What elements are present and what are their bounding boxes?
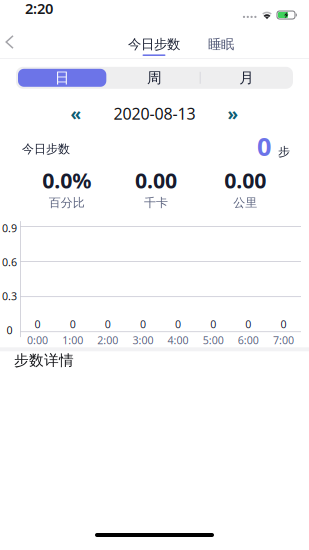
staticText: 0 — [245, 317, 251, 331]
button[interactable]: 今日步数 — [128, 28, 180, 56]
staticText: 0 — [280, 317, 286, 331]
staticText: 5:00 — [203, 333, 224, 347]
staticText: 0 — [70, 317, 76, 331]
button[interactable]: Back — [0, 28, 24, 56]
staticText: 7:00 — [273, 333, 294, 347]
button[interactable]: 月 — [201, 67, 293, 89]
staticText: 百分比 — [49, 195, 85, 210]
staticText: 0 — [105, 317, 111, 331]
staticText: 0 — [175, 317, 181, 331]
staticText: 0:00 — [27, 333, 48, 347]
staticText: 0 — [210, 317, 216, 331]
staticText: 今日步数 — [22, 142, 70, 156]
staticText: » — [227, 102, 238, 125]
staticText: 0.00 — [224, 166, 266, 194]
staticText: 今日步数 — [128, 36, 180, 52]
staticText: 2020-08-13 — [113, 103, 195, 124]
button[interactable]: Next day — [217, 103, 249, 123]
staticText: 月 — [239, 69, 254, 87]
staticText: 公里 — [233, 195, 257, 210]
staticText: 0.6 — [2, 255, 17, 269]
staticText: 日 — [55, 69, 70, 87]
staticText: 0 — [140, 317, 146, 331]
staticText: 1:00 — [62, 333, 83, 347]
staticText: 步数详情 — [14, 351, 74, 369]
staticText: 4:00 — [168, 333, 189, 347]
staticText: 0.0% — [42, 166, 91, 194]
staticText: 周 — [147, 69, 162, 87]
staticText: 0 — [6, 323, 12, 337]
staticText: 6:00 — [238, 333, 259, 347]
staticText: 0 — [35, 317, 41, 331]
staticText: 0 — [257, 129, 271, 163]
staticText: 步 — [278, 144, 290, 159]
button[interactable]: Previous day — [60, 103, 92, 123]
staticText: 0.9 — [2, 221, 17, 235]
staticText: 0.3 — [2, 289, 17, 303]
staticText: 睡眠 — [208, 36, 234, 52]
staticText: 2:00 — [97, 333, 118, 347]
button[interactable]: 日 — [16, 67, 108, 89]
staticText: « — [70, 102, 81, 125]
button[interactable]: 周 — [108, 67, 201, 89]
staticText: 2:20 — [25, 0, 53, 18]
staticText: 千卡 — [144, 195, 168, 210]
button[interactable]: 睡眠 — [208, 28, 234, 56]
staticText: 0.00 — [135, 166, 177, 194]
staticText: 3:00 — [132, 333, 153, 347]
